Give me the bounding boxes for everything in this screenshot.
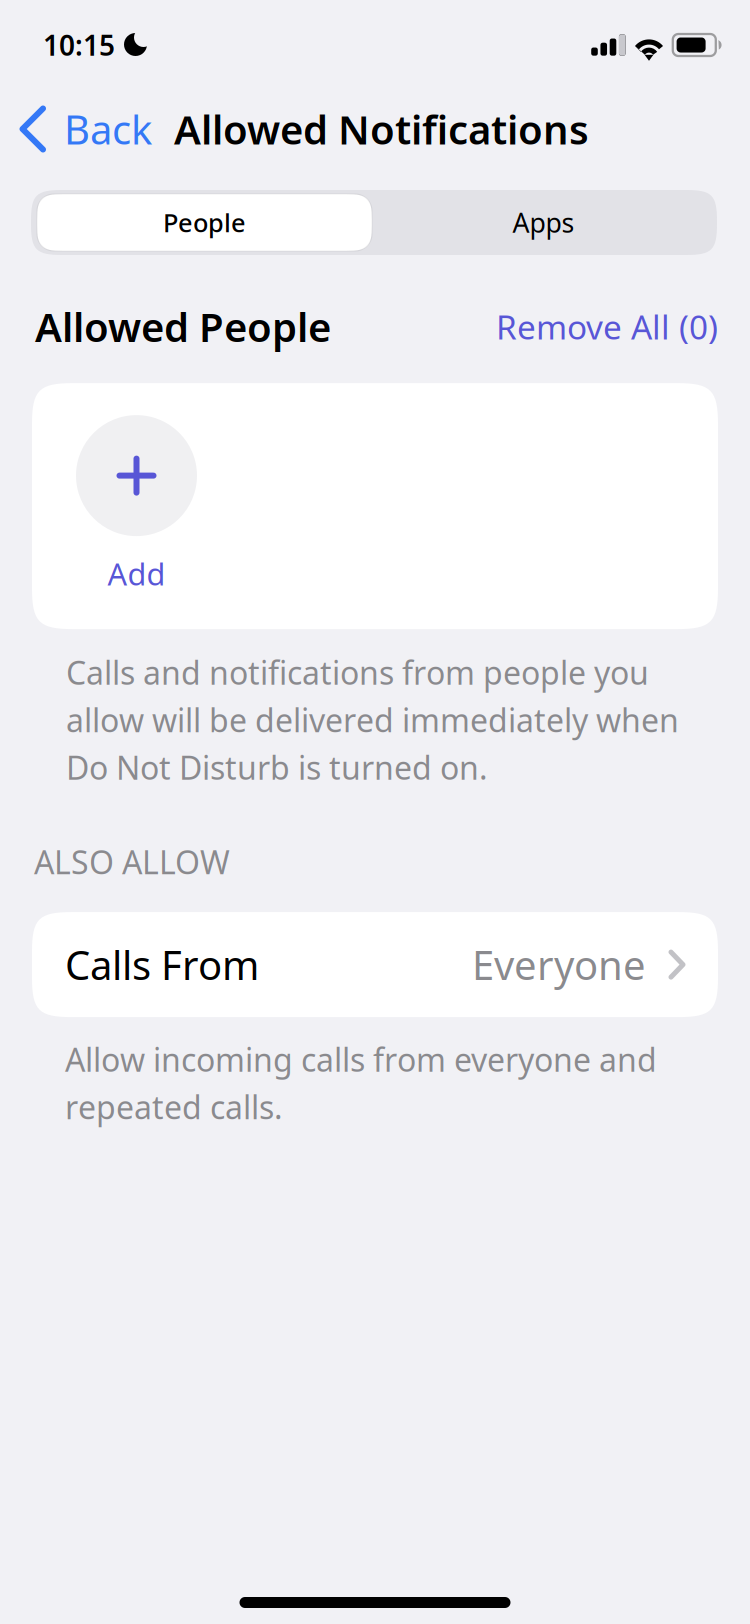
staticText: Apps [512,205,574,240]
button[interactable]: Calls From [32,912,718,1017]
staticText: Allowed People [35,300,331,353]
staticText: People [163,206,246,239]
staticText: Calls From [65,938,259,991]
staticText: 10:15 [43,26,115,64]
staticText: Everyone [472,938,646,991]
staticText: Back [64,102,152,155]
staticText: Calls and notifications from people you … [66,651,679,789]
staticText: Add [107,553,165,594]
button[interactable]: Remove All (0) [496,304,718,349]
button[interactable]: Apps [374,194,713,251]
button[interactable]: Back [0,96,174,161]
button[interactable]: People [35,194,374,251]
staticText: ALSO ALLOW [34,841,230,883]
staticText: Allow incoming calls from everyone and r… [65,1038,657,1128]
staticText: Allowed Notifications [174,102,589,155]
staticText: Remove All (0) [496,304,718,349]
button[interactable]: Add [32,383,197,594]
